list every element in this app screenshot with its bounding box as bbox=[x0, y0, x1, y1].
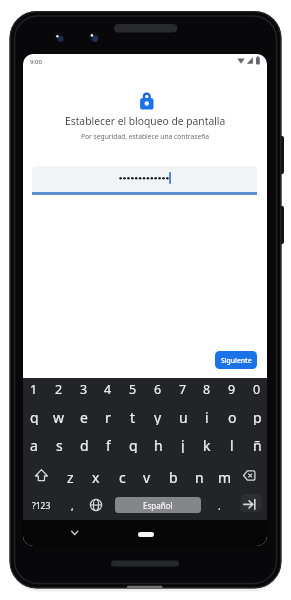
button[interactable]: . bbox=[209, 498, 229, 514]
button[interactable]: 8 bbox=[195, 381, 219, 398]
button[interactable]: v bbox=[135, 468, 159, 485]
staticText: d bbox=[80, 436, 89, 453]
button[interactable]: s bbox=[47, 436, 71, 453]
button[interactable]: b bbox=[161, 468, 185, 485]
button[interactable]: 1 bbox=[23, 381, 46, 398]
staticText: o bbox=[228, 408, 237, 425]
button[interactable]: j bbox=[171, 436, 195, 453]
staticText: 9:00 bbox=[30, 58, 42, 66]
button[interactable]: , bbox=[62, 498, 82, 514]
button[interactable]: t bbox=[121, 408, 145, 425]
button[interactable]: m bbox=[213, 468, 237, 485]
staticText: 3 bbox=[80, 381, 88, 398]
staticText: 9 bbox=[228, 381, 236, 398]
staticText: 8 bbox=[203, 381, 211, 398]
button[interactable]: k bbox=[195, 436, 219, 453]
button[interactable]: p bbox=[245, 408, 267, 425]
staticText: Por seguridad, establece una contraseña bbox=[81, 132, 210, 141]
staticText: e bbox=[80, 408, 88, 425]
button[interactable]: x bbox=[84, 468, 108, 485]
button[interactable]: u bbox=[171, 408, 195, 425]
button[interactable]: y bbox=[146, 408, 170, 425]
staticText: 1 bbox=[30, 381, 38, 398]
staticText: 7 bbox=[179, 381, 187, 398]
button[interactable]: 0 bbox=[245, 381, 267, 398]
staticText: 4 bbox=[104, 381, 112, 398]
button[interactable]: g bbox=[121, 436, 145, 453]
button[interactable]: q bbox=[23, 408, 46, 425]
button[interactable]: ?123 bbox=[28, 498, 54, 514]
button[interactable]: w bbox=[47, 408, 71, 425]
staticText: n bbox=[195, 468, 204, 485]
staticText: m bbox=[218, 468, 232, 485]
button[interactable]: Español bbox=[115, 497, 201, 513]
staticText: Español bbox=[143, 500, 173, 511]
button[interactable]: 3 bbox=[72, 381, 96, 398]
button[interactable]: ñ bbox=[245, 436, 267, 453]
button[interactable]: e bbox=[72, 408, 96, 425]
staticText: v bbox=[143, 468, 151, 485]
staticText: 6 bbox=[154, 381, 162, 398]
staticText: , bbox=[71, 499, 74, 513]
staticText: k bbox=[203, 436, 211, 453]
staticText: 5 bbox=[129, 381, 137, 398]
staticText: z bbox=[67, 468, 74, 485]
button[interactable]: a bbox=[23, 436, 46, 453]
button[interactable]: i bbox=[195, 408, 219, 425]
staticText: ñ bbox=[253, 436, 262, 453]
staticText: r bbox=[105, 408, 111, 425]
staticText: . bbox=[218, 499, 221, 513]
button[interactable]: z bbox=[58, 468, 82, 485]
button[interactable] bbox=[138, 532, 154, 537]
button[interactable]: r bbox=[96, 408, 120, 425]
staticText: a bbox=[30, 436, 38, 453]
button[interactable]: 2 bbox=[47, 381, 71, 398]
button[interactable]: h bbox=[146, 436, 170, 453]
button[interactable]: Siguiente bbox=[215, 351, 257, 369]
button[interactable]: 5 bbox=[121, 381, 145, 398]
staticText: s bbox=[56, 436, 63, 453]
staticText: 2 bbox=[55, 381, 63, 398]
staticText: ?123 bbox=[32, 500, 51, 512]
staticText: b bbox=[169, 468, 178, 485]
button[interactable]: d bbox=[72, 436, 96, 453]
button[interactable]: f bbox=[96, 436, 120, 453]
button[interactable]: c bbox=[110, 468, 134, 485]
staticText: Siguiente bbox=[221, 356, 252, 365]
button[interactable]: o bbox=[220, 408, 244, 425]
staticText: f bbox=[106, 436, 111, 453]
button[interactable]: 4 bbox=[96, 381, 120, 398]
staticText: i bbox=[205, 408, 209, 425]
staticText: j bbox=[181, 436, 185, 453]
staticText: w bbox=[53, 408, 65, 425]
button[interactable]: n bbox=[187, 468, 211, 485]
staticText: h bbox=[154, 436, 163, 453]
button[interactable]: 7 bbox=[171, 381, 195, 398]
button[interactable]: l bbox=[220, 436, 244, 453]
staticText: l bbox=[230, 436, 234, 453]
staticText: t bbox=[130, 408, 136, 425]
staticText: 0 bbox=[253, 381, 261, 398]
staticText: u bbox=[179, 408, 188, 425]
staticText: x bbox=[92, 468, 100, 485]
staticText: c bbox=[119, 468, 126, 485]
staticText: p bbox=[253, 408, 262, 425]
staticText: Establecer el bloqueo de pantalla bbox=[65, 114, 226, 128]
staticText: g bbox=[129, 436, 138, 453]
staticText: q bbox=[30, 408, 39, 425]
button[interactable]: 6 bbox=[146, 381, 170, 398]
button[interactable] bbox=[32, 166, 257, 192]
staticText: y bbox=[154, 408, 162, 425]
button[interactable]: 9 bbox=[220, 381, 244, 398]
